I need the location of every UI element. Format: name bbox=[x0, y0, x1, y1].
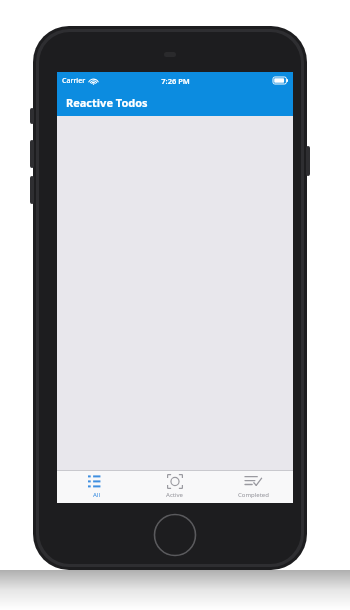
staticText: Carrier bbox=[62, 76, 86, 86]
button[interactable]: Active bbox=[135, 471, 214, 503]
staticText: 7:26 PM bbox=[161, 76, 190, 86]
button[interactable]: Completed bbox=[214, 471, 293, 503]
staticText: Completed bbox=[238, 491, 269, 499]
staticText: Active bbox=[166, 491, 183, 499]
staticText: All bbox=[93, 491, 100, 499]
button[interactable]: All bbox=[57, 471, 135, 503]
staticText: Reactive Todos bbox=[66, 95, 148, 110]
button[interactable]: Home bbox=[153, 513, 197, 557]
